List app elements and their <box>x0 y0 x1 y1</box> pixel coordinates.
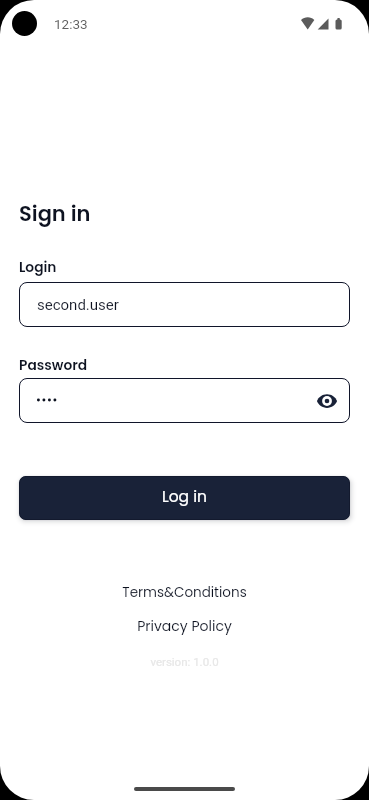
button[interactable]: second.user <box>19 282 350 327</box>
staticText: Privacy Policy <box>137 616 232 636</box>
staticText: Password <box>19 356 88 375</box>
button[interactable]: Show password <box>315 389 339 413</box>
staticText: Terms&Conditions <box>122 583 247 602</box>
button[interactable]: Terms&Conditions <box>0 581 369 603</box>
staticText: Log in <box>162 486 207 508</box>
staticText: version: 1.0.0 <box>150 655 219 668</box>
staticText: Login <box>19 258 57 277</box>
button[interactable]: Privacy Policy <box>0 615 369 637</box>
button[interactable]: Log in <box>19 476 350 520</box>
staticText: Sign in <box>19 199 91 228</box>
staticText: 12:33 <box>54 16 88 32</box>
staticText: second.user <box>37 296 119 314</box>
